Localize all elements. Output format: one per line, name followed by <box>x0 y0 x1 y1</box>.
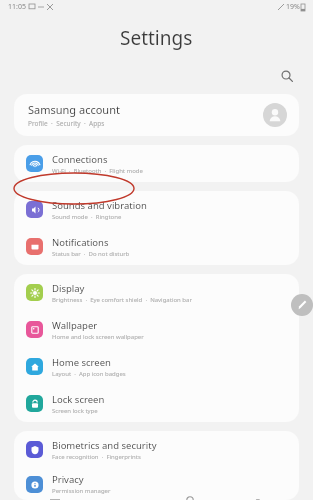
button[interactable]: Search <box>275 64 299 88</box>
button[interactable]: Lock screen <box>14 385 299 422</box>
staticText: Wallpaper <box>52 319 98 332</box>
staticText: Privacy <box>52 473 84 486</box>
staticText: Display <box>52 282 85 295</box>
button[interactable]: Samsung account <box>14 94 299 136</box>
staticText: Settings <box>120 25 193 51</box>
staticText: Face recognition · Fingerprints <box>52 453 141 461</box>
staticText: Home and lock screen wallpaper <box>52 333 144 341</box>
staticText: Wi-Fi · Bluetooth · Flight mode <box>52 167 143 175</box>
button[interactable]: Display <box>14 274 299 311</box>
staticText: Brightness · Eye comfort shield · Naviga… <box>52 296 192 304</box>
staticText: Sounds and vibration <box>52 199 147 212</box>
staticText: Status bar · Do not disturb <box>52 250 130 258</box>
staticText: Sound mode · Ringtone <box>52 213 122 221</box>
button[interactable]: Biometrics and security <box>14 431 299 468</box>
button[interactable]: Notifications <box>14 228 299 265</box>
staticText: Screen lock type <box>52 407 98 415</box>
button[interactable]: Wallpaper <box>14 311 299 348</box>
staticText: Biometrics and security <box>52 439 157 452</box>
button[interactable]: Connections <box>14 145 299 182</box>
button[interactable]: Edit <box>291 294 313 316</box>
staticText: 11:05 <box>8 2 26 12</box>
staticText: Profile · Security · Apps <box>28 119 105 128</box>
button[interactable]: Sounds and vibration <box>14 191 299 228</box>
staticText: Lock screen <box>52 393 105 406</box>
staticText: Permission manager <box>52 487 111 495</box>
staticText: Notifications <box>52 236 109 249</box>
staticText: Layout · App icon badges <box>52 370 126 378</box>
button[interactable]: Privacy <box>14 468 299 500</box>
staticText: Home screen <box>52 356 111 369</box>
staticText: 19% <box>286 2 300 12</box>
staticText: Connections <box>52 153 108 166</box>
staticText: Samsung account <box>28 102 120 117</box>
button[interactable]: Home screen <box>14 348 299 385</box>
